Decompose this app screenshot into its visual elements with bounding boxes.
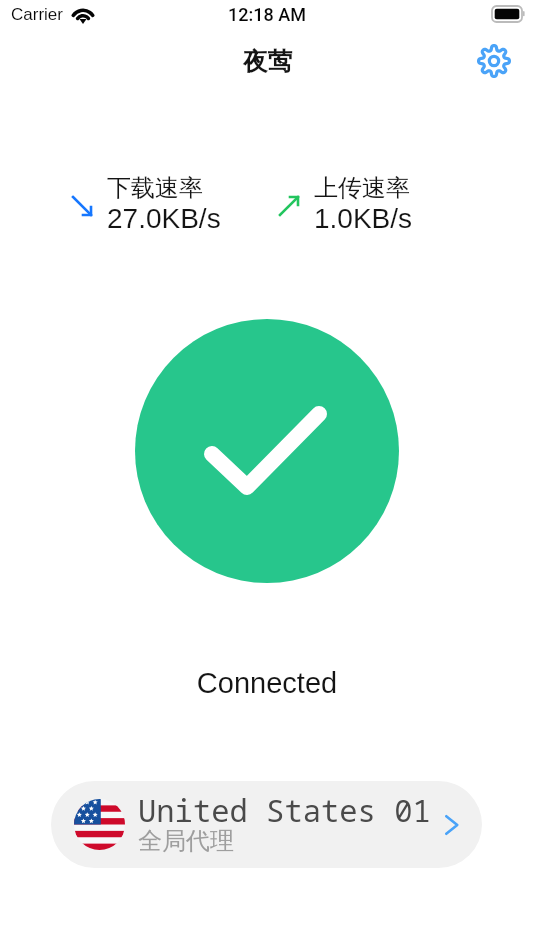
staticText: 上传速率 xyxy=(314,173,410,203)
staticText: Carrier xyxy=(11,5,63,24)
staticText: 下载速率 xyxy=(107,173,203,203)
staticText: 全局代理 xyxy=(138,826,234,856)
staticText: Connected xyxy=(0,667,534,699)
button[interactable]: Settings xyxy=(476,43,512,79)
button[interactable]: Disconnect xyxy=(135,319,399,583)
staticText: 12:18 AM xyxy=(228,4,306,25)
staticText: 1.0KB/s xyxy=(314,203,413,234)
staticText: 夜莺 xyxy=(243,46,292,77)
staticText: 27.0KB/s xyxy=(107,203,221,234)
staticText: United States 01 xyxy=(138,789,431,831)
button[interactable]: United States 01 xyxy=(51,781,482,868)
